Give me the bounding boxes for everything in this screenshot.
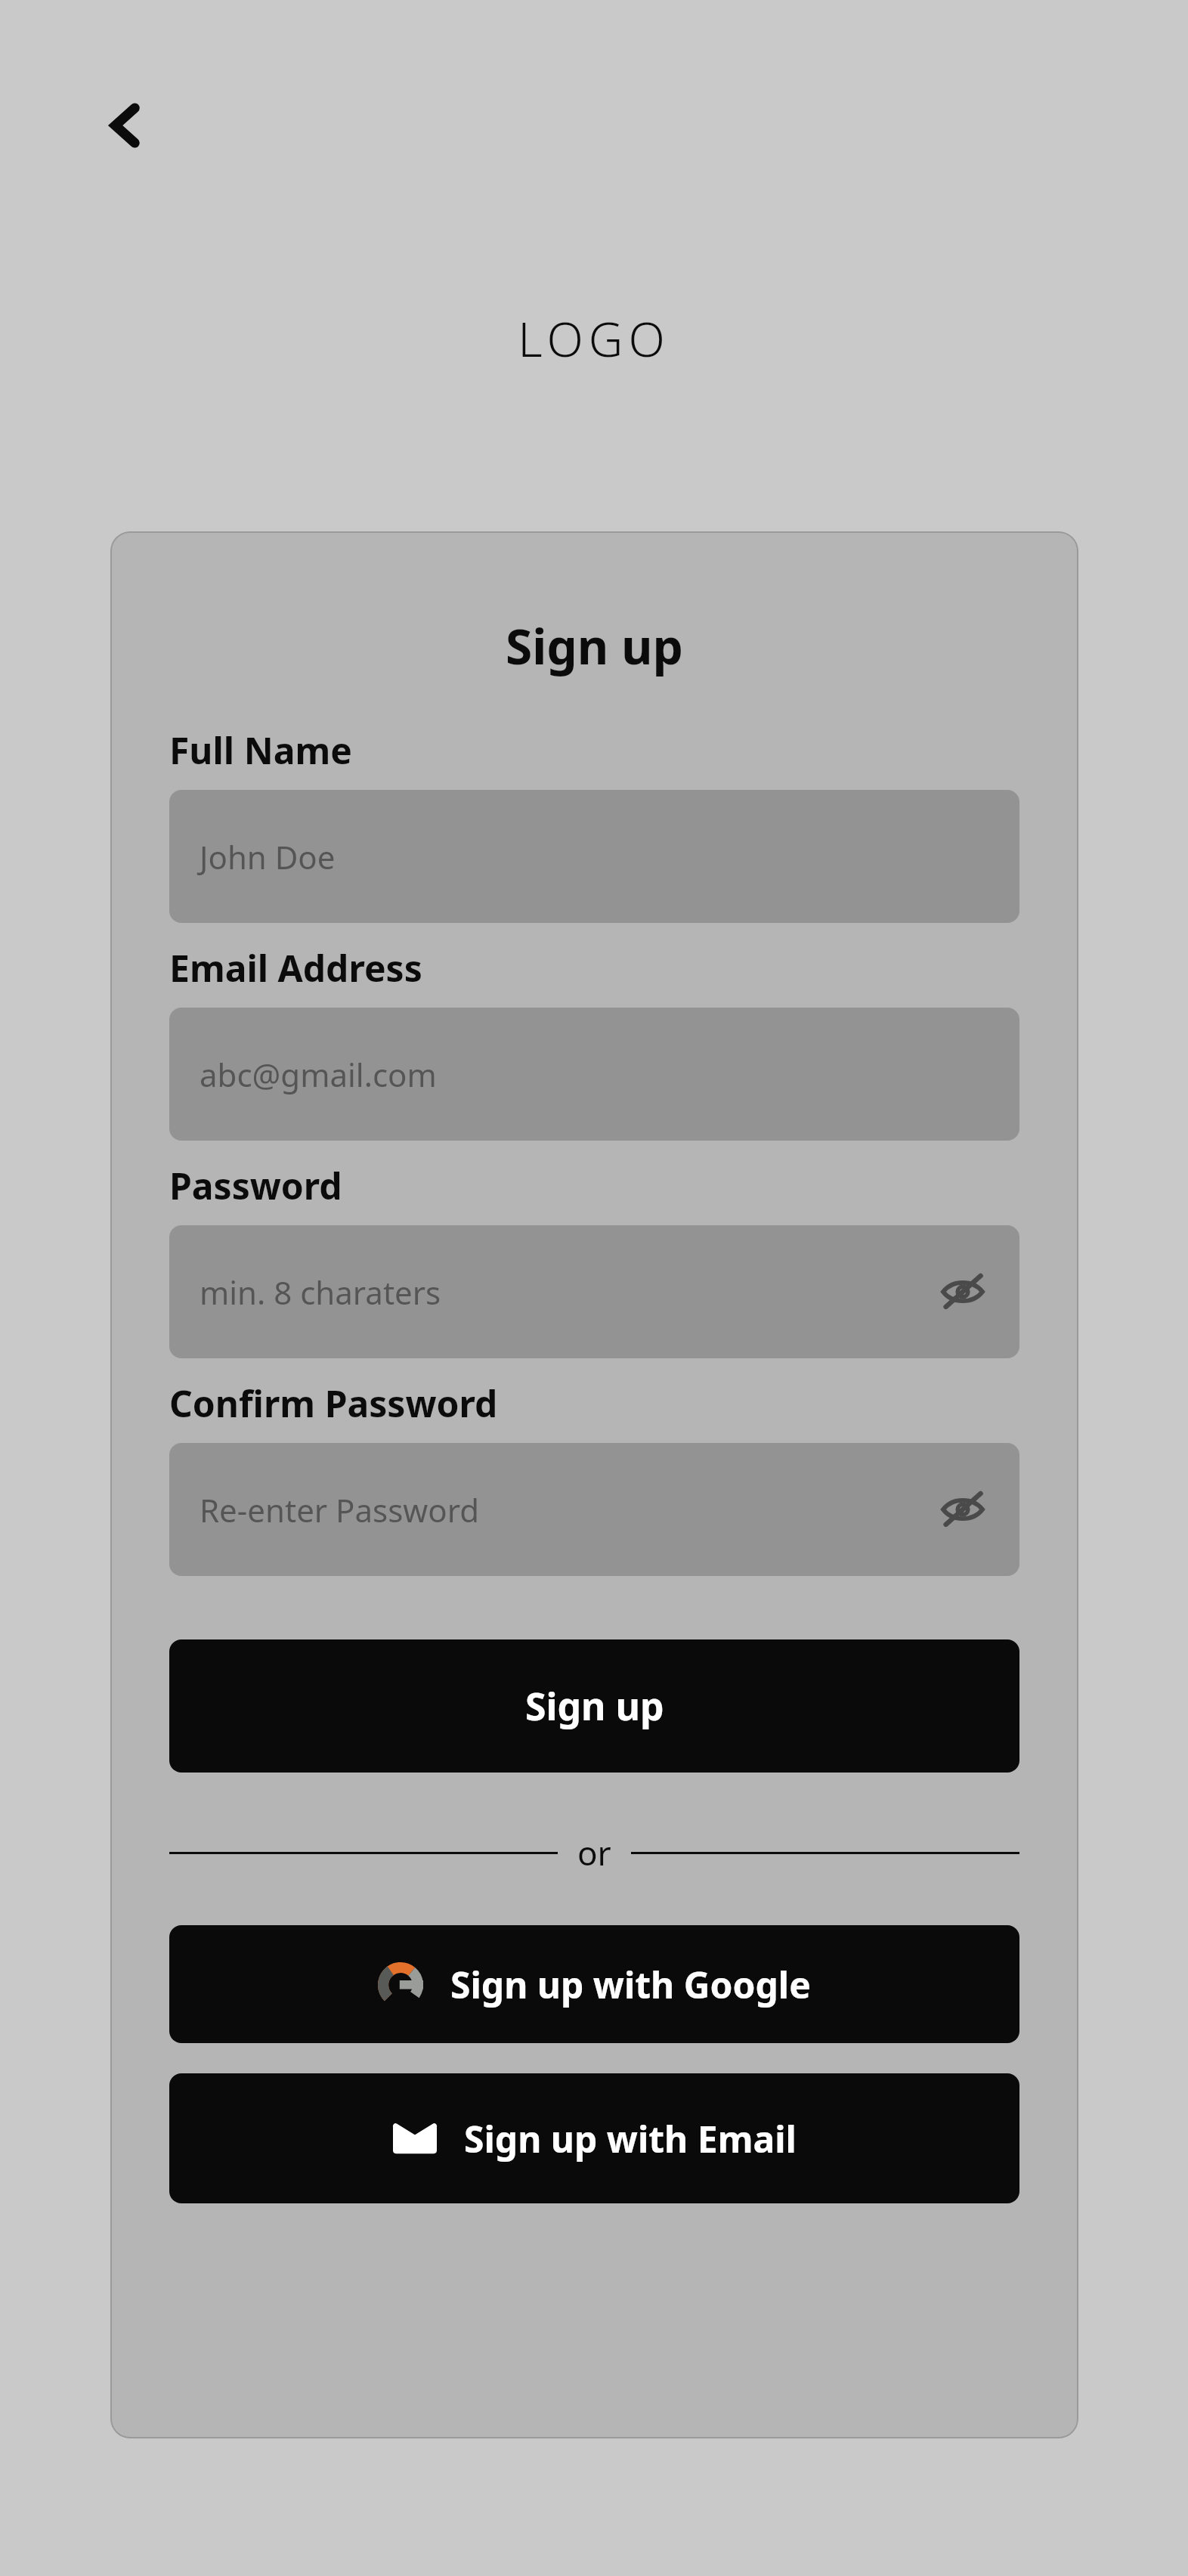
button[interactable]: min. 8 charaters [169,1225,1019,1358]
button[interactable]: Sign up with Email [169,2073,1019,2203]
staticText: LOGO [0,306,1188,371]
button[interactable]: John Doe [169,790,1019,923]
staticText: or [577,1830,611,1875]
staticText: Sign up with Google [450,1960,811,2009]
staticText: Confirm Password [169,1379,498,1428]
button[interactable]: Show password [933,1480,992,1539]
staticText: Re-enter Password [200,1488,480,1531]
staticText: Sign up with Email [464,2114,797,2163]
button[interactable]: Sign up with Google [169,1925,1019,2043]
button[interactable]: Back [85,83,169,168]
button[interactable]: Show password [933,1262,992,1321]
staticText: Full Name [169,726,352,775]
button[interactable]: abc@gmail.com [169,1008,1019,1141]
button[interactable]: Sign up [169,1639,1019,1773]
staticText: Password [169,1161,342,1210]
staticText: John Doe [200,835,336,878]
staticText: Sign up [525,1680,664,1732]
staticText: Sign up [110,613,1078,679]
staticText: abc@gmail.com [200,1053,437,1096]
button[interactable]: Re-enter Password [169,1443,1019,1576]
staticText: Email Address [169,943,422,992]
staticText: min. 8 charaters [200,1271,441,1314]
